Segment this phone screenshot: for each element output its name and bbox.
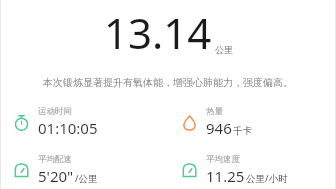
button[interactable]: Average pace — [0, 154, 168, 186]
other: Exercise time — [12, 113, 31, 132]
button[interactable]: Calories — [168, 106, 336, 138]
other: Average speed — [180, 161, 199, 180]
staticText: /公里 — [75, 172, 98, 185]
staticText: 公里 — [215, 44, 233, 55]
staticText: 平均配速 — [38, 154, 72, 165]
staticText: 01:10:05 — [38, 118, 98, 138]
staticText: 千卡 — [233, 125, 252, 137]
button[interactable]: Exercise time — [0, 106, 168, 138]
button[interactable]: Average speed — [168, 154, 336, 186]
staticText: 13.14 — [104, 4, 212, 61]
staticText: 5'20" — [38, 166, 74, 186]
staticText: 热量 — [206, 106, 223, 117]
other: Calories — [180, 113, 199, 132]
staticText: 11.25 — [206, 166, 245, 186]
staticText: 平均速度 — [206, 154, 240, 165]
other: Average pace — [12, 161, 31, 180]
staticText: 本次锻炼显著提升有氧体能，增强心肺能力，强度偏高。 — [14, 76, 322, 89]
staticText: 946 — [206, 118, 232, 138]
staticText: 公里/小时 — [246, 172, 288, 185]
staticText: 运动时间 — [38, 106, 72, 117]
